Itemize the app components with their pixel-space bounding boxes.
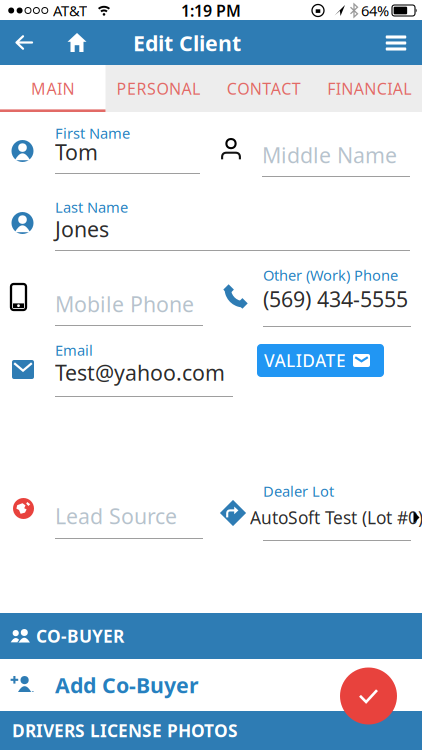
staticText: First Name <box>55 123 130 143</box>
staticText: Middle Name <box>262 141 397 169</box>
staticText: Mobile Phone <box>55 290 194 318</box>
button[interactable]: VALIDATE <box>257 344 384 377</box>
staticText: DRIVERS LICENSE PHOTOS <box>12 719 238 742</box>
staticText: Test@yahoo.com <box>55 358 225 387</box>
staticText: 1:19 PM <box>181 0 241 21</box>
button[interactable]: Home <box>55 20 99 65</box>
staticText: PERSONAL <box>116 78 200 99</box>
staticText: Email <box>55 340 93 360</box>
staticText: Jones <box>55 215 109 243</box>
staticText: Add Co-Buyer <box>55 671 199 699</box>
staticText: CO-BUYER <box>36 624 124 647</box>
button[interactable]: Add Co-Buyer <box>0 659 422 711</box>
button[interactable]: MAIN <box>0 65 105 112</box>
staticText: Lead Source <box>55 502 177 530</box>
button[interactable]: Dealer Lot <box>210 487 422 539</box>
button[interactable]: Menu <box>374 20 418 65</box>
button[interactable]: PERSONAL <box>105 65 211 112</box>
button[interactable]: Save <box>340 667 397 724</box>
staticText: Other (Work) Phone <box>263 265 398 285</box>
staticText: (569) 434-5555 <box>263 285 408 313</box>
button[interactable]: Back <box>2 20 46 65</box>
staticText: VALIDATE <box>264 349 346 372</box>
button[interactable]: CONTACT <box>211 65 316 112</box>
staticText: Edit Client <box>133 29 241 57</box>
staticText: Last Name <box>55 197 128 217</box>
staticText: FINANCIAL <box>327 78 411 99</box>
staticText: Dealer Lot <box>263 481 334 501</box>
button[interactable]: FINANCIAL <box>316 65 422 112</box>
staticText: AutoSoft Test (Lot #0) <box>250 506 422 529</box>
staticText: CONTACT <box>227 78 301 99</box>
staticText: Tom <box>55 138 98 166</box>
staticText: 64% <box>361 1 389 20</box>
staticText: MAIN <box>31 78 74 99</box>
staticText: AT&T <box>53 1 87 20</box>
